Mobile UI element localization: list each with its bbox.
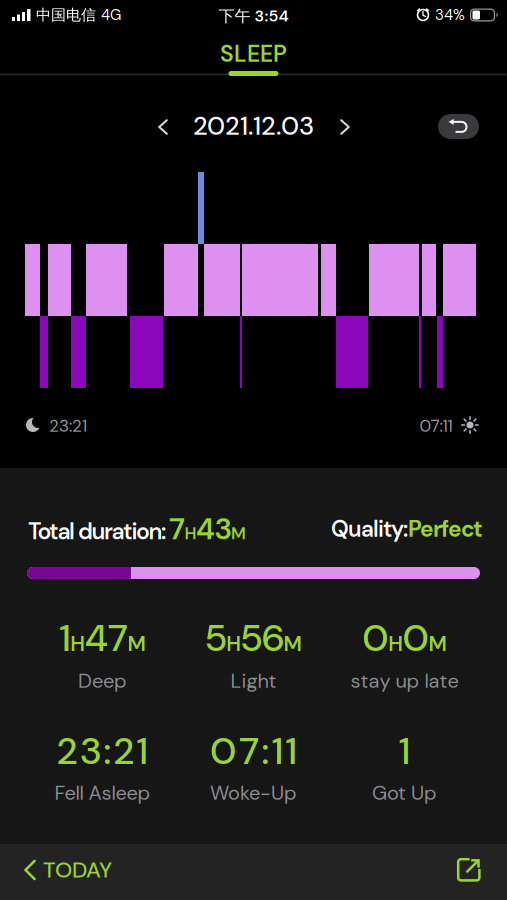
staticText: Got Up xyxy=(372,780,437,806)
staticText: 1 xyxy=(399,727,410,775)
staticText: Deep xyxy=(78,668,127,694)
staticText: 23:21 xyxy=(49,415,87,437)
staticText: 0H0M xyxy=(362,614,446,662)
button[interactable]: Back to today xyxy=(438,114,479,139)
staticText: 07:11 xyxy=(419,415,452,437)
staticText: stay up late xyxy=(350,668,458,694)
button[interactable]: Previous day xyxy=(158,119,168,135)
staticText: 中国电信 xyxy=(36,6,96,24)
staticText: 34% xyxy=(435,5,465,25)
button[interactable]: TODAY xyxy=(24,856,112,884)
staticText: TODAY xyxy=(43,856,112,884)
staticText: 7H43M xyxy=(169,510,246,548)
staticText: 下午 3:54 xyxy=(218,6,288,26)
staticText: Quality: xyxy=(331,514,408,544)
staticText: SLEEP xyxy=(220,39,287,69)
staticText: 2021.12.03 xyxy=(193,109,314,143)
staticText: Total duration: xyxy=(28,516,166,546)
button[interactable]: SLEEP xyxy=(220,39,287,69)
staticText: 4G xyxy=(101,5,121,25)
staticText: Light xyxy=(230,668,276,694)
staticText: Woke-Up xyxy=(210,780,297,806)
staticText: 07:11 xyxy=(210,727,297,775)
staticText: 5H56M xyxy=(206,614,301,662)
button[interactable]: Share xyxy=(456,857,482,883)
staticText: Fell Asleep xyxy=(54,780,150,806)
staticText: 23:21 xyxy=(57,727,148,775)
button[interactable]: Next day xyxy=(340,119,350,135)
staticText: 1H47M xyxy=(60,614,145,662)
staticText: Perfect xyxy=(408,514,483,544)
